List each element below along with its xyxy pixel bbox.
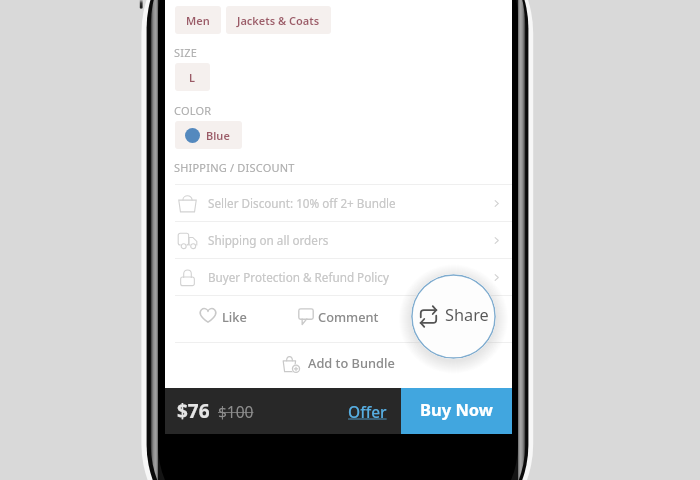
staticText: SIZE bbox=[174, 45, 197, 60]
button[interactable]: L bbox=[175, 63, 210, 91]
staticText: Men bbox=[186, 13, 210, 28]
button[interactable]: Share bbox=[396, 296, 512, 342]
staticText: $76 bbox=[177, 398, 210, 424]
staticText: Blue bbox=[206, 128, 230, 143]
staticText: Buyer Protection & Refund Policy bbox=[208, 269, 389, 285]
button[interactable]: Comment bbox=[280, 296, 396, 342]
button[interactable]: Blue bbox=[175, 121, 242, 149]
button[interactable]: Share bbox=[411, 274, 496, 359]
staticText: Jackets & Coats bbox=[237, 13, 320, 28]
staticText: Shipping on all orders bbox=[208, 232, 329, 248]
staticText: Offer bbox=[348, 401, 387, 422]
staticText: COLOR bbox=[174, 103, 212, 118]
staticText: Comment bbox=[318, 308, 379, 325]
staticText: $100 bbox=[218, 401, 254, 422]
button[interactable]: Shipping on all orders bbox=[165, 222, 512, 258]
staticText: Seller Discount: 10% off 2+ Bundle bbox=[208, 195, 396, 211]
button[interactable]: Jackets & Coats bbox=[226, 6, 331, 34]
button[interactable]: Buyer Protection & Refund Policy bbox=[165, 259, 512, 295]
button[interactable]: Like bbox=[165, 296, 280, 342]
button[interactable]: Buy Now bbox=[401, 388, 512, 434]
button[interactable]: $76 bbox=[165, 388, 401, 434]
button[interactable]: Men bbox=[175, 6, 221, 34]
button[interactable]: Add to Bundle bbox=[165, 343, 512, 390]
staticText: Add to Bundle bbox=[308, 354, 395, 371]
staticText: SHIPPING / DISCOUNT bbox=[174, 160, 295, 175]
staticText: Share bbox=[445, 308, 480, 325]
staticText: Like bbox=[222, 308, 247, 325]
button[interactable]: Seller Discount: 10% off 2+ Bundle bbox=[165, 185, 512, 221]
staticText: Share bbox=[445, 304, 489, 326]
staticText: L bbox=[189, 70, 196, 85]
staticText: Buy Now bbox=[420, 398, 493, 420]
